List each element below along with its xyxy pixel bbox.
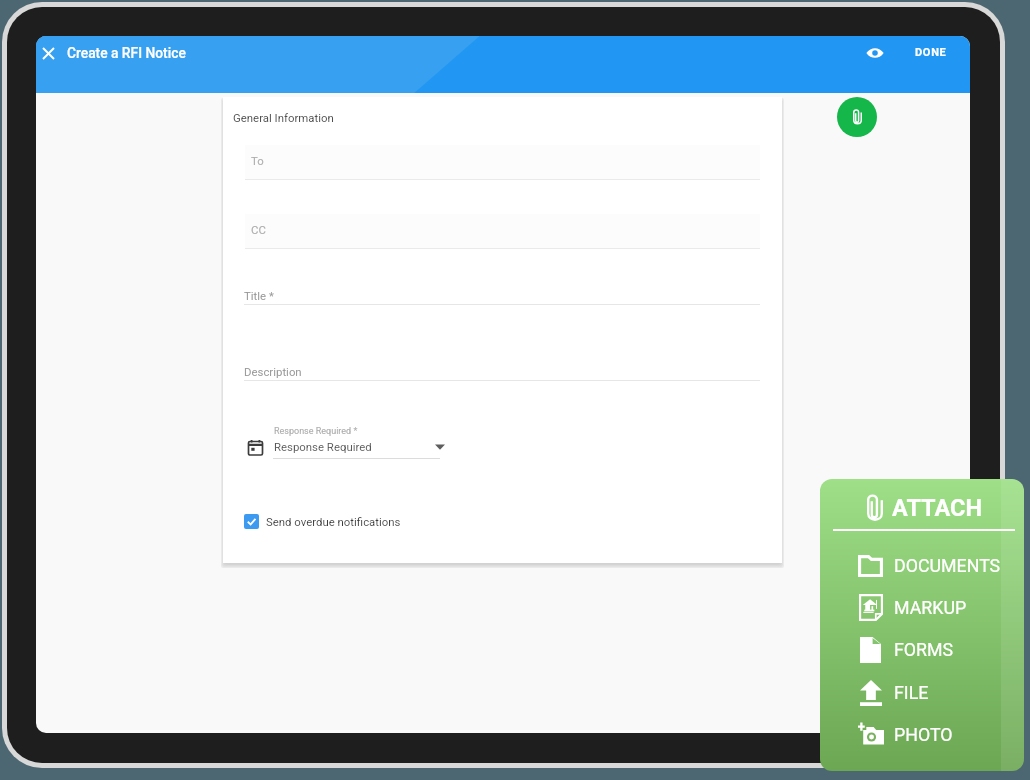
staticText: DONE [915,46,947,59]
staticText: Response Required * [274,426,358,437]
button[interactable]: DONE [911,40,951,65]
staticText: MARKUP [894,597,967,618]
staticText: FILE [894,682,929,703]
staticText: Response Required [274,440,372,453]
button[interactable]: FORMS [857,628,1024,670]
staticText: ATTACH [892,494,983,522]
button[interactable]: ATTACH [820,479,1024,771]
staticText: PHOTO [894,724,953,745]
staticText: Title * [244,289,274,302]
staticText: General Information [233,111,334,124]
staticText: CC [251,223,266,236]
button[interactable]: Send overdue notifications [244,513,401,529]
button[interactable]: Close [36,41,60,65]
staticText: DOCUMENTS [894,555,1001,576]
staticText: Create a RFI Notice [67,45,186,61]
staticText: Send overdue notifications [266,515,401,528]
button[interactable]: CC [245,214,760,249]
button[interactable]: FILE [857,671,1024,713]
staticText: FORMS [894,639,954,660]
button[interactable]: PHOTO [857,713,1024,755]
button[interactable]: To [245,145,760,180]
button[interactable]: Attach [837,97,877,137]
staticText: To [251,154,264,167]
button[interactable]: MARKUP [857,586,1024,628]
button[interactable]: Description [244,365,760,381]
button[interactable]: Preview [857,36,893,69]
button[interactable]: DOCUMENTS [857,544,1024,586]
staticText: Description [244,365,302,378]
button[interactable]: Title * [244,289,760,305]
